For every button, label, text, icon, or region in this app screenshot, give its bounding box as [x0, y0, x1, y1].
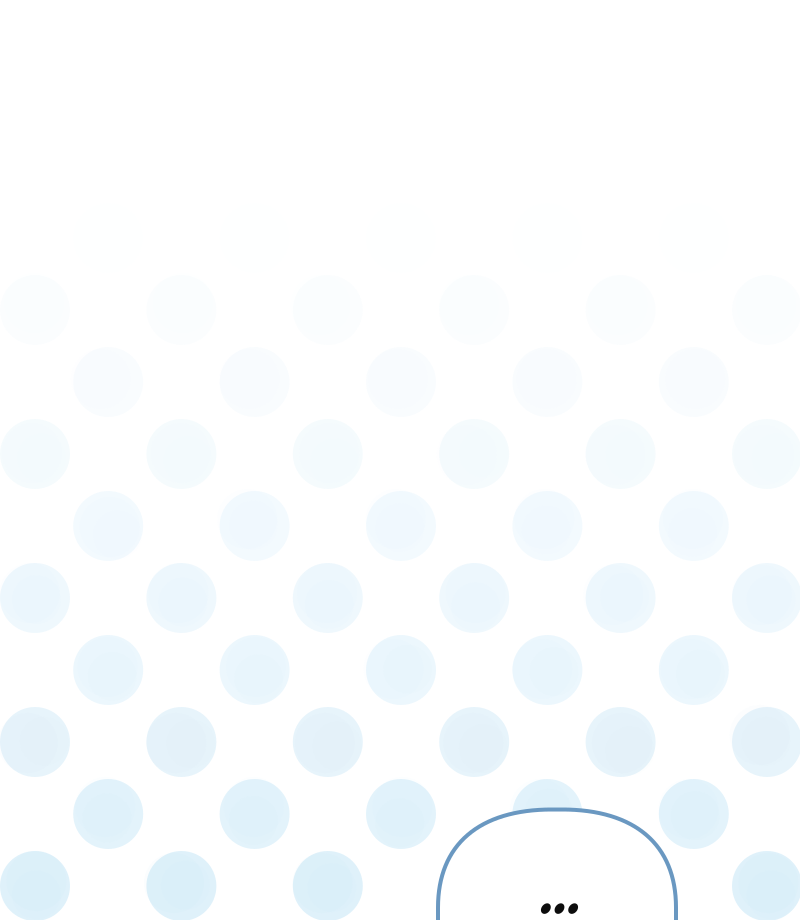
button[interactable]: Typing message bubble	[438, 809, 676, 920]
